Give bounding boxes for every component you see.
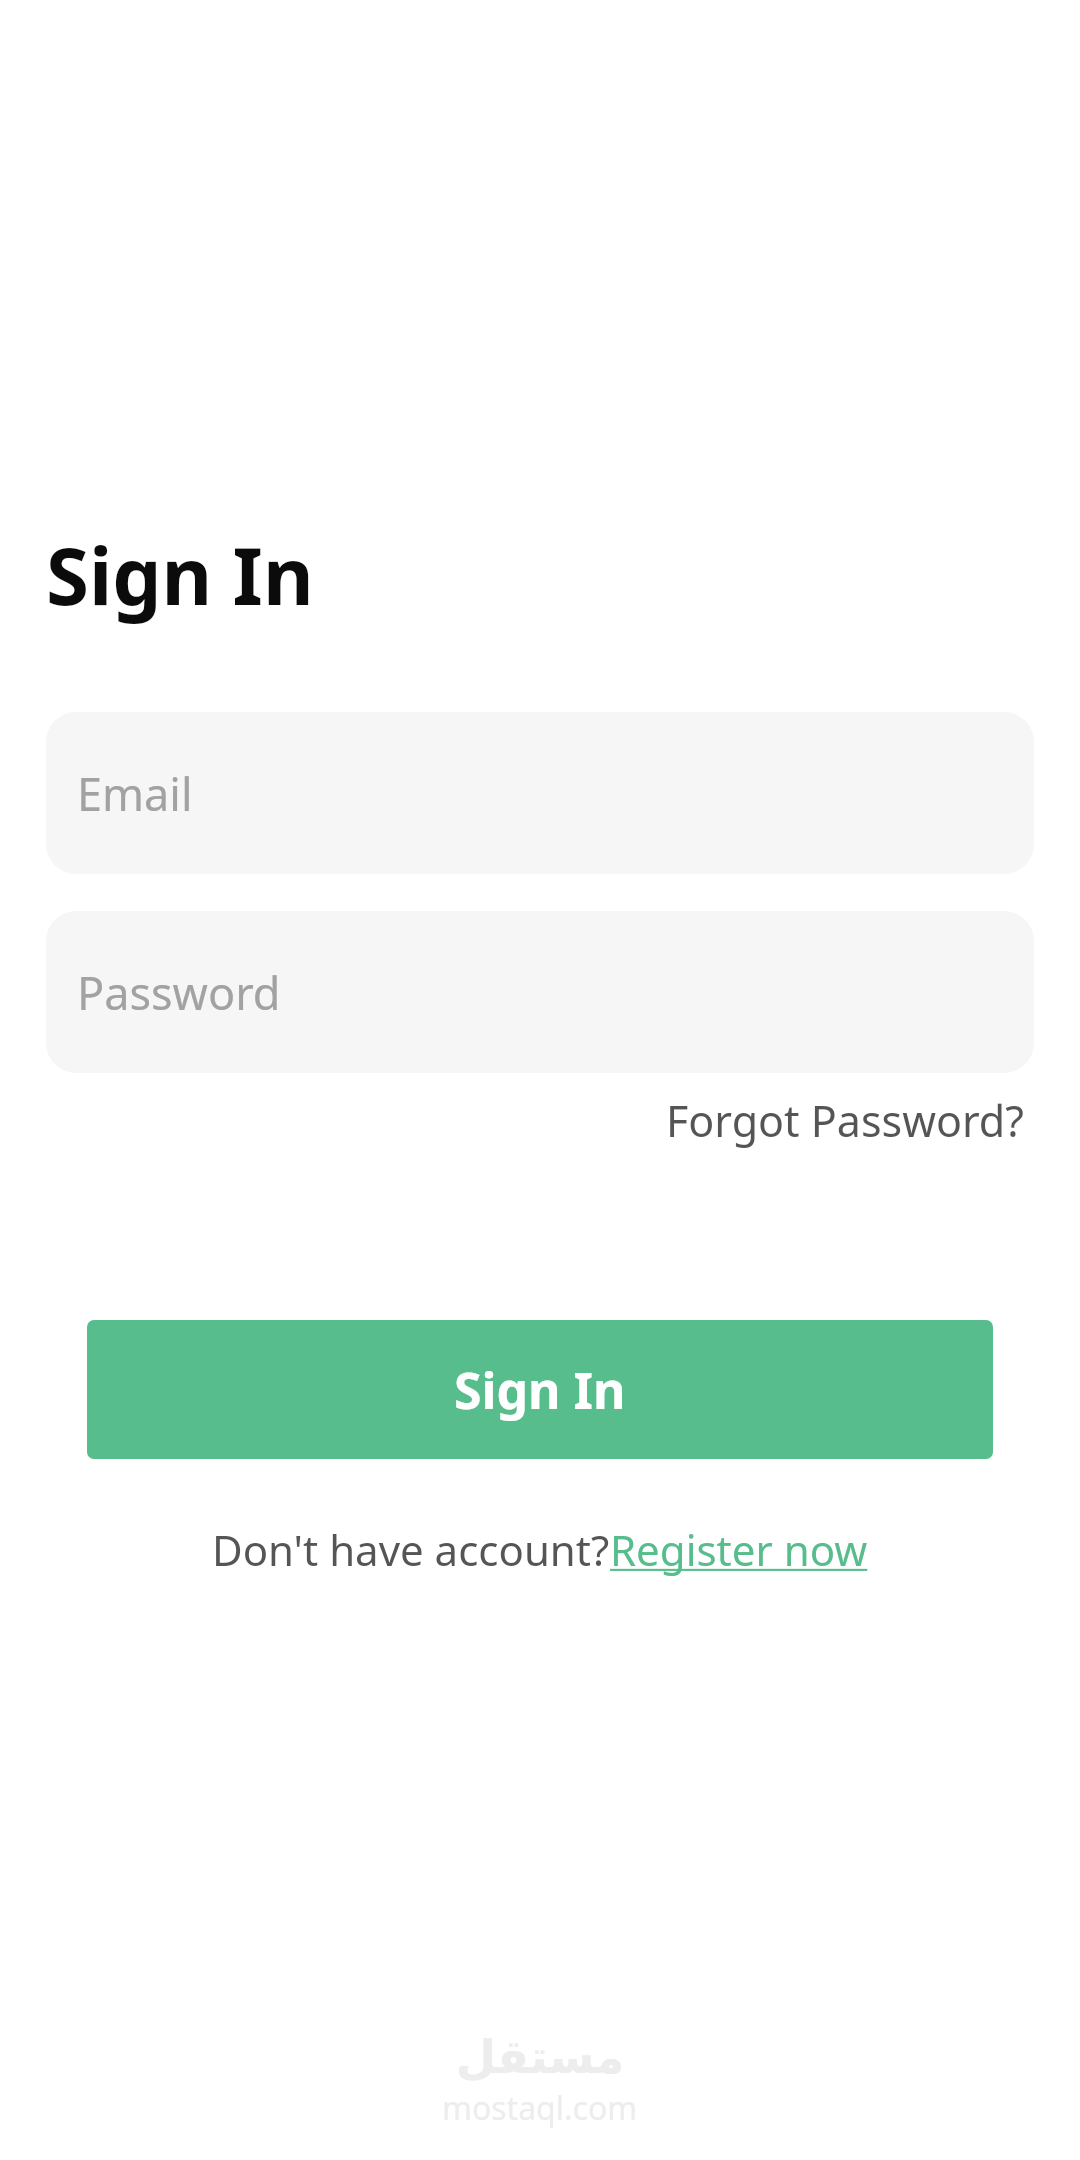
staticText: Email [77, 763, 193, 824]
staticText: Sign In [46, 522, 314, 628]
button[interactable]: Email [46, 712, 1034, 874]
button[interactable]: Sign In [87, 1320, 993, 1459]
staticText: Password [77, 962, 281, 1023]
staticText: مستقل [456, 2030, 625, 2084]
button[interactable]: Password [46, 911, 1034, 1073]
staticText: Sign In [454, 1356, 626, 1424]
button[interactable]: Forgot Password? [642, 1073, 1080, 1168]
staticText: Don't have account? [212, 1521, 610, 1578]
staticText: Register now [610, 1521, 868, 1578]
button[interactable]: Register now [610, 1521, 868, 1578]
staticText: mostaql.com [442, 2086, 638, 2130]
staticText: Forgot Password? [666, 1091, 1024, 1150]
